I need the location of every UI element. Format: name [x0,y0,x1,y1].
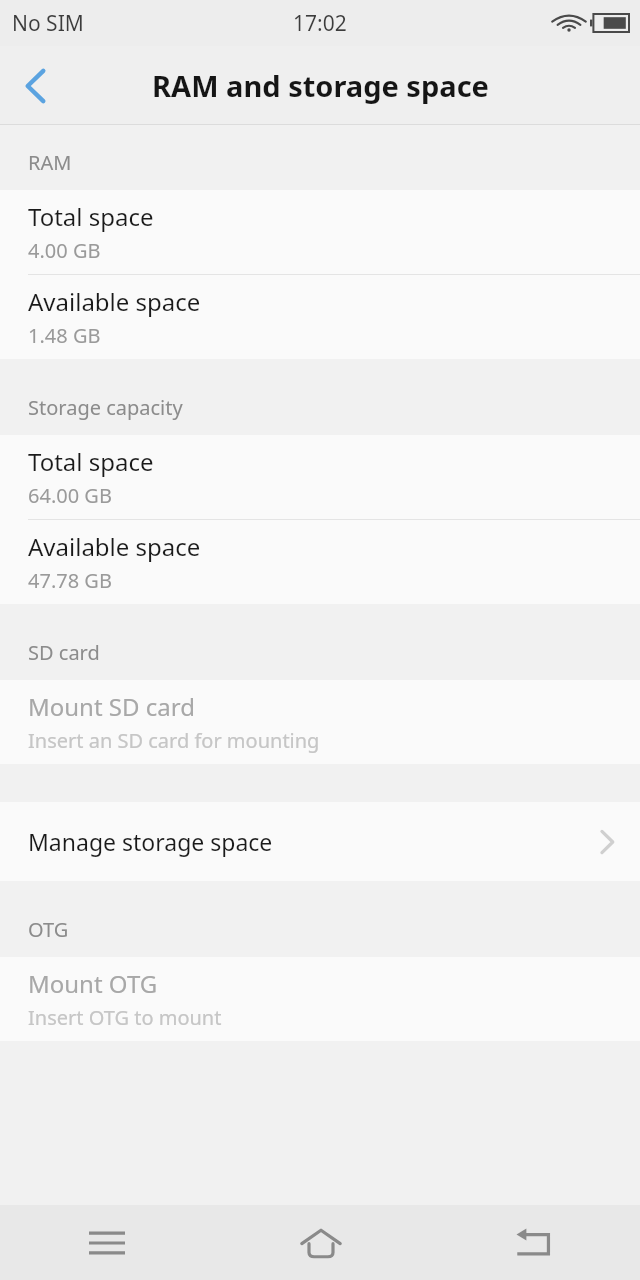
staticText: Total space [28,200,154,233]
staticText: 17:02 [293,9,347,38]
button[interactable]: Back [427,1205,640,1280]
staticText: 1.48 GB [28,322,101,349]
button[interactable]: Home [214,1205,427,1280]
staticText: Manage storage space [28,826,273,857]
staticText: No SIM [12,9,84,38]
staticText: 4.00 GB [28,237,101,264]
staticText: Insert OTG to mount [28,1004,222,1031]
staticText: Total space [28,445,154,478]
staticText: RAM and storage space [152,66,489,105]
button[interactable]: Available space [0,275,640,359]
staticText: Mount SD card [28,690,195,723]
button[interactable]: Total space [0,435,640,519]
button[interactable]: Menu [0,1205,214,1280]
staticText: Available space [28,530,201,563]
button[interactable]: Available space [0,520,640,604]
staticText: Available space [28,285,201,318]
button[interactable]: Total space [0,190,640,274]
staticText: RAM [28,149,72,176]
staticText: Storage capacity [28,394,183,421]
staticText: OTG [28,916,69,943]
staticText: Insert an SD card for mounting [28,727,320,754]
button[interactable]: Mount SD card [0,680,640,764]
staticText: Mount OTG [28,967,158,1000]
staticText: SD card [28,639,100,666]
button[interactable]: Back [0,50,72,122]
staticText: 64.00 GB [28,482,112,509]
button[interactable]: Mount OTG [0,957,640,1041]
staticText: 47.78 GB [28,567,112,594]
button[interactable]: Manage storage space [0,802,640,881]
